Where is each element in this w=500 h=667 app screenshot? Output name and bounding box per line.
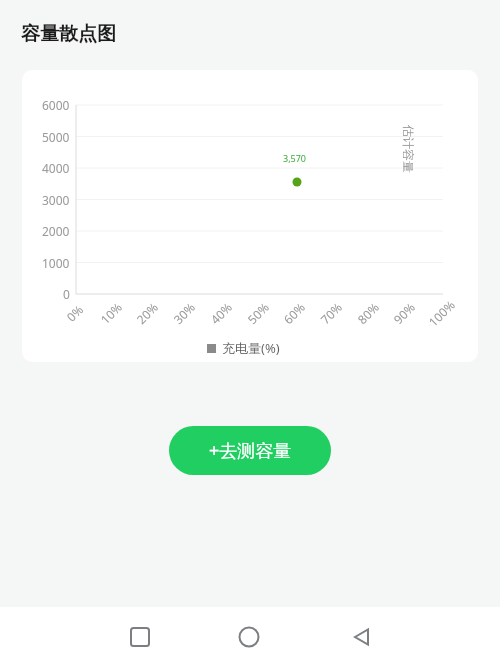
- staticText: 50%: [244, 299, 272, 327]
- staticText: 90%: [390, 299, 418, 327]
- staticText: 3000: [42, 192, 70, 208]
- staticText: 容量散点图: [21, 22, 116, 46]
- staticText: 1000: [42, 255, 70, 271]
- staticText: 0%: [63, 301, 86, 325]
- button[interactable]: Home: [229, 617, 269, 657]
- staticText: 40%: [207, 299, 235, 327]
- button[interactable]: Recents: [120, 617, 160, 657]
- staticText: 100%: [425, 296, 458, 330]
- button[interactable]: Back: [342, 617, 382, 657]
- staticText: 充电量(%): [222, 339, 280, 357]
- staticText: 70%: [317, 299, 345, 327]
- staticText: 0: [63, 286, 70, 302]
- staticText: 80%: [354, 299, 382, 327]
- staticText: 60%: [280, 299, 308, 327]
- staticText: 10%: [97, 299, 125, 327]
- button[interactable]: +去测容量: [169, 426, 331, 475]
- staticText: 估计容量(mAh): [400, 125, 416, 203]
- staticText: +去测容量: [209, 438, 292, 463]
- staticText: 2000: [42, 223, 70, 239]
- staticText: 30%: [170, 299, 198, 327]
- staticText: 20%: [133, 299, 161, 327]
- staticText: 5000: [42, 129, 70, 145]
- staticText: 4000: [42, 160, 70, 176]
- staticText: 3,570: [283, 152, 307, 164]
- staticText: 6000: [42, 97, 70, 113]
